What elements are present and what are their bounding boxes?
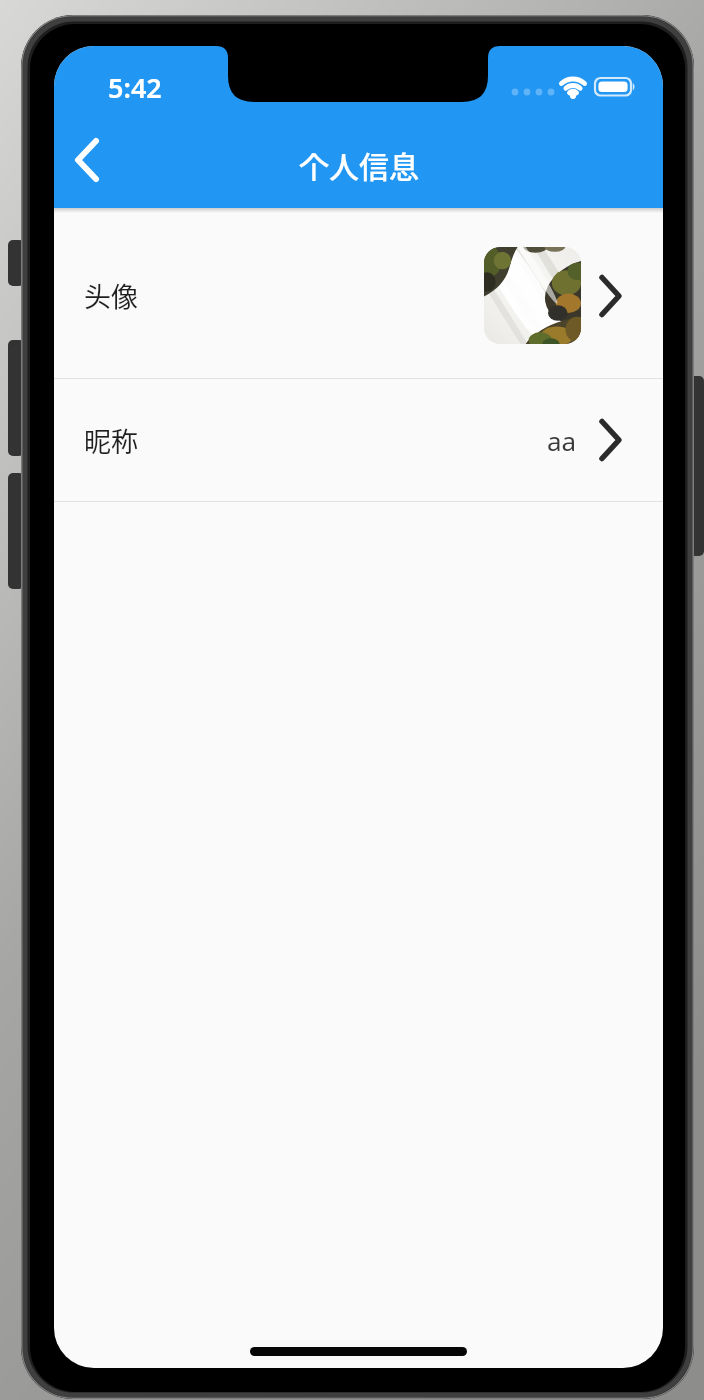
staticText: 5:42 — [108, 69, 162, 106]
staticText: 头像 — [84, 276, 138, 315]
button[interactable] — [65, 138, 109, 182]
staticText: 昵称 — [84, 421, 138, 460]
button[interactable]: 昵称 — [54, 379, 663, 501]
button[interactable]: 头像 — [54, 213, 663, 378]
staticText: aa — [547, 423, 577, 458]
staticText: 个人信息 — [299, 143, 419, 186]
